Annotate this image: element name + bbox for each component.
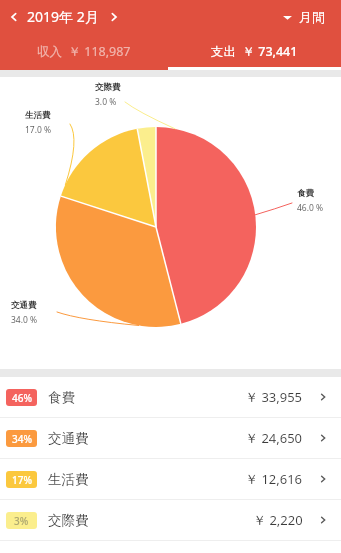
staticText: ￥ 24,650 [245,429,303,447]
staticText: 交際費 [48,512,89,529]
staticText: 46% [12,391,32,405]
staticText: 食費 [48,389,75,406]
staticText: ￥ 12,616 [245,470,303,488]
staticText: 交際費 [95,82,121,93]
button[interactable]: 34% [0,418,341,458]
button[interactable]: 支出 ￥ 73,441 [168,33,341,70]
button[interactable]: Next month [104,7,124,27]
other: Open 食費 [317,391,329,403]
button[interactable]: 3% [0,500,341,540]
staticText: 34.0 % [11,314,38,326]
staticText: 食費 [297,188,314,199]
staticText: 17% [12,473,32,487]
button[interactable]: 収入 ￥ 118,987 [0,33,168,70]
other: Open 交通費 [317,432,329,444]
staticText: 交通費 [48,430,89,447]
button[interactable]: Previous month [4,7,24,27]
staticText: 3% [14,514,29,528]
staticText: 17.0 % [25,124,52,136]
button[interactable]: 46% [0,377,341,417]
button[interactable]: 月間 [273,4,335,30]
staticText: 収入 ￥ 118,987 [37,43,131,60]
staticText: 34% [12,432,32,446]
button[interactable]: 17% [0,459,341,499]
staticText: ￥ 2,220 [253,511,303,529]
other: Open 生活費 [317,473,329,485]
staticText: 生活費 [25,110,51,121]
staticText: 月間 [299,9,325,25]
staticText: 交通費 [11,300,37,311]
staticText: 46.0 % [297,202,324,214]
other: Open 交際費 [317,514,329,526]
staticText: 生活費 [48,471,89,488]
staticText: 3.0 % [95,96,117,108]
staticText: ￥ 33,955 [245,388,303,406]
button[interactable]: 2019年 2月 [24,7,102,26]
staticText: 支出 ￥ 73,441 [211,43,298,60]
staticText: 2019年 2月 [27,7,99,26]
